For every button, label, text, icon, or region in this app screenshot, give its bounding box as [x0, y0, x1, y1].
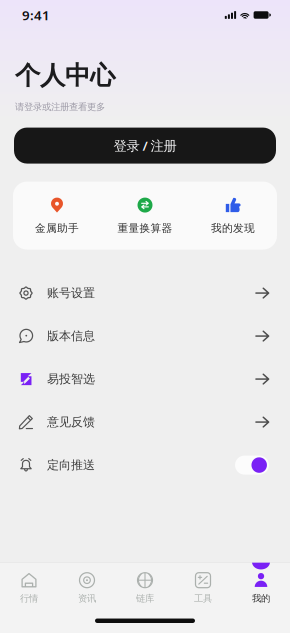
staticText: 链库 [136, 593, 154, 604]
button[interactable]: 账号设置 [0, 272, 290, 315]
staticText: 我的 [252, 593, 270, 604]
staticText: 定向推送 [47, 458, 95, 472]
staticText: 易投智选 [47, 372, 95, 386]
button[interactable]: 我的 [232, 563, 290, 608]
staticText: 登录 / 注册 [113, 137, 176, 154]
button[interactable]: 登录 / 注册 [14, 128, 276, 164]
button[interactable]: 行情 [0, 563, 58, 608]
staticText: 9:41 [22, 6, 50, 24]
staticText: 请登录或注册查看更多 [15, 101, 105, 113]
staticText: 行情 [20, 593, 38, 604]
button[interactable]: 我的发现 [189, 182, 277, 250]
button[interactable]: 工具 [174, 563, 232, 608]
staticText: 资讯 [78, 593, 96, 604]
button[interactable]: 易投智选 [0, 358, 290, 401]
staticText: 版本信息 [47, 329, 95, 343]
staticText: 账号设置 [47, 286, 95, 300]
staticText: 我的发现 [211, 222, 255, 235]
staticText: 意见反馈 [47, 415, 95, 429]
button[interactable]: 资讯 [58, 563, 116, 608]
button[interactable]: 链库 [116, 563, 174, 608]
button[interactable]: 定向推送 [0, 444, 290, 487]
staticText: 重量换算器 [117, 222, 172, 235]
button[interactable]: 意见反馈 [0, 401, 290, 444]
button[interactable]: 重量换算器 [101, 182, 189, 250]
button[interactable]: 版本信息 [0, 315, 290, 358]
button[interactable]: 金属助手 [13, 182, 101, 250]
staticText: 金属助手 [35, 222, 79, 235]
staticText: 个人中心 [15, 60, 115, 91]
staticText: 工具 [194, 593, 212, 604]
